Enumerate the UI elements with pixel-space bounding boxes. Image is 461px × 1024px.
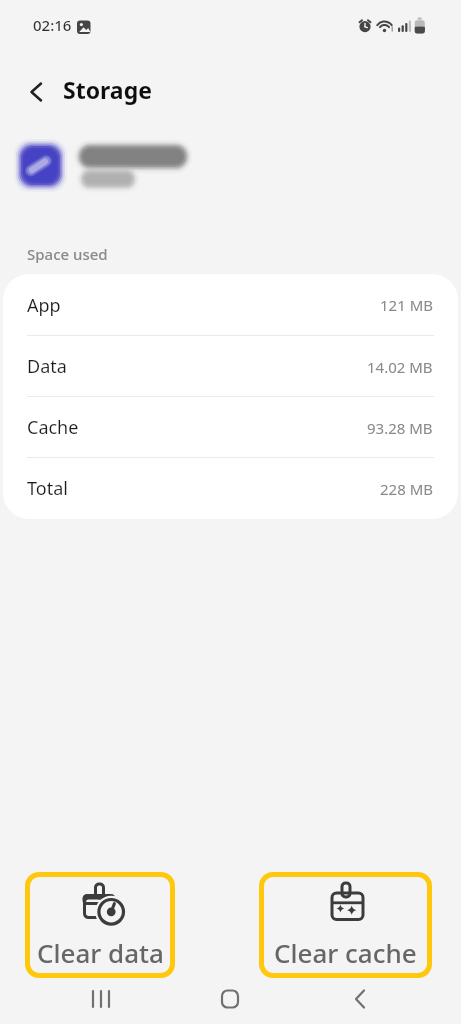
button[interactable] bbox=[337, 976, 383, 1022]
button[interactable]: App bbox=[3, 274, 458, 336]
staticText: 93.28 MB bbox=[367, 418, 433, 438]
staticText: Data bbox=[27, 354, 67, 379]
button[interactable]: Total bbox=[3, 458, 458, 519]
button[interactable]: Cache bbox=[3, 397, 458, 458]
staticText: App bbox=[27, 293, 61, 318]
button[interactable] bbox=[207, 976, 253, 1022]
button[interactable]: Clear data bbox=[25, 872, 175, 978]
staticText: Storage bbox=[63, 74, 152, 105]
staticText: Space used bbox=[27, 244, 108, 264]
staticText: Cache bbox=[27, 415, 79, 440]
staticText: 14.02 MB bbox=[367, 357, 433, 377]
staticText: 228 MB bbox=[380, 479, 433, 499]
staticText: 121 MB bbox=[380, 295, 433, 315]
button[interactable]: Clear cache bbox=[259, 872, 432, 978]
staticText: Clear cache bbox=[274, 935, 417, 970]
button[interactable]: Data bbox=[3, 336, 458, 397]
staticText: Clear data bbox=[37, 935, 164, 970]
button[interactable] bbox=[78, 976, 124, 1022]
staticText: Total bbox=[27, 476, 68, 501]
button[interactable] bbox=[18, 74, 54, 110]
staticText: 02:16 bbox=[33, 15, 72, 35]
